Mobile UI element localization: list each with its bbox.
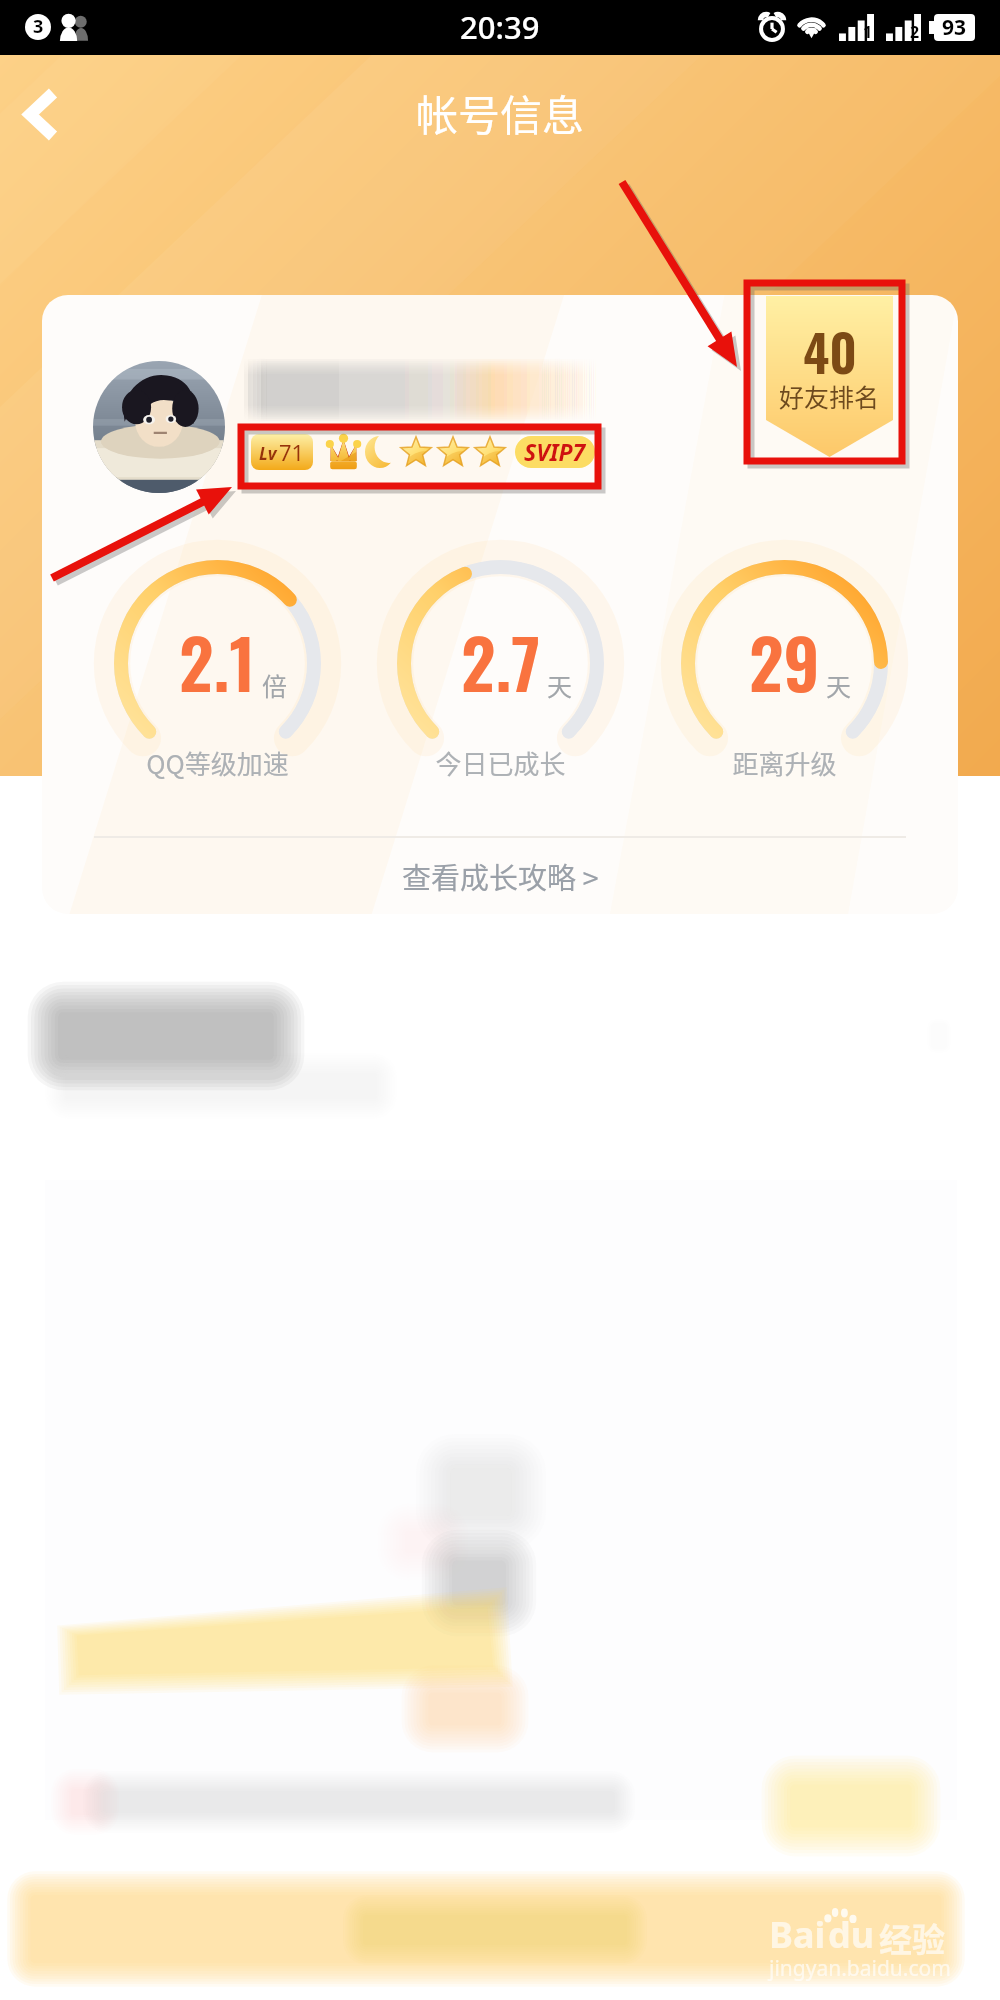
- staticText: 29: [749, 611, 820, 712]
- staticText: 今日已成长: [435, 744, 566, 782]
- staticText: 天: [826, 667, 852, 703]
- button[interactable]: 40: [766, 296, 893, 457]
- staticText: du: [828, 1910, 875, 1959]
- staticText: 2: [910, 21, 920, 43]
- button[interactable]: Lv: [42, 295, 958, 914]
- staticText: 倍: [262, 667, 288, 703]
- staticText: 2.7: [461, 611, 541, 712]
- staticText: 1: [863, 21, 873, 43]
- staticText: 好友排名: [779, 378, 880, 414]
- staticText: 天: [547, 667, 573, 703]
- button[interactable]: Back: [5, 78, 77, 150]
- staticText: 71: [279, 437, 305, 467]
- staticText: QQ等级加速: [146, 744, 289, 782]
- staticText: 3: [33, 14, 44, 39]
- staticText: 距离升级: [732, 744, 837, 782]
- staticText: 40: [803, 313, 857, 389]
- staticText: 20:39: [460, 6, 540, 48]
- staticText: 帐号信息: [416, 82, 585, 143]
- staticText: jingyan.baidu.com: [769, 1954, 951, 1983]
- button[interactable]: Lv: [251, 427, 601, 477]
- staticText: 经验: [879, 1914, 945, 1962]
- staticText: Lv: [259, 442, 277, 465]
- staticText: 2.1: [179, 611, 256, 712]
- staticText: SVIP7: [524, 436, 586, 467]
- staticText: 93: [942, 14, 967, 40]
- button[interactable]: Level details: [42, 996, 958, 1080]
- button[interactable]: Upgrade now: [30, 1890, 970, 1968]
- staticText: Bai: [769, 1910, 826, 1959]
- button[interactable]: 查看成长攻略 >: [42, 838, 958, 914]
- staticText: 查看成长攻略 >: [402, 855, 599, 897]
